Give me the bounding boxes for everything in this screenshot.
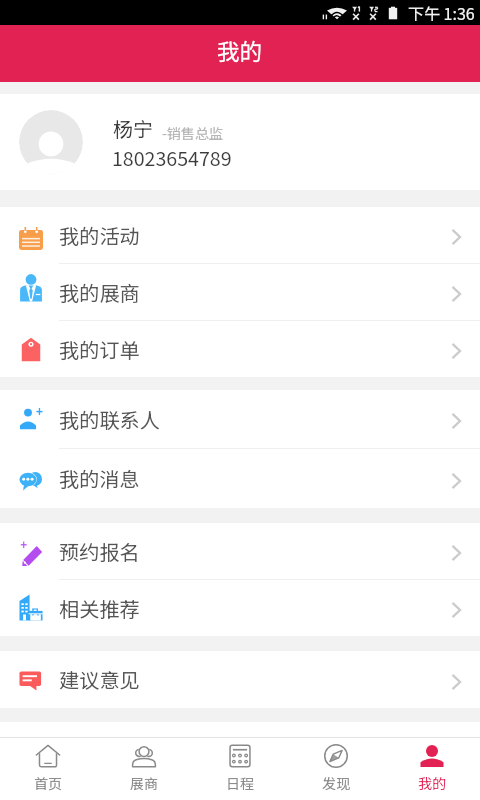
button[interactable]: 我的活动 — [0, 207, 480, 263]
staticText: 建议意见 — [59, 665, 140, 694]
staticText: 18023654789 — [112, 143, 232, 171]
button[interactable]: 我的展商 — [0, 264, 480, 320]
staticText: -销售总监 — [162, 123, 223, 143]
button[interactable]: 建议意见 — [0, 651, 480, 708]
staticText: 发现 — [322, 773, 350, 793]
staticText: 我的 — [217, 34, 263, 67]
button[interactable]: 我的联系人 — [0, 390, 480, 448]
staticText: 预约报名 — [59, 537, 140, 566]
staticText: 下午 1:36 — [408, 1, 475, 24]
button[interactable]: 发现 — [288, 738, 384, 800]
staticText: 我的联系人 — [59, 405, 160, 434]
staticText: 相关推荐 — [59, 594, 140, 623]
button[interactable]: 展商 — [96, 738, 192, 800]
button[interactable]: 我的订单 — [0, 321, 480, 377]
button[interactable]: 我的 — [384, 738, 480, 800]
staticText: 我的订单 — [59, 335, 140, 364]
button[interactable]: 预约报名 — [0, 523, 480, 579]
button[interactable]: 日程 — [192, 738, 288, 800]
staticText: 日程 — [226, 773, 254, 793]
staticText: 我的消息 — [59, 464, 140, 493]
staticText: 首页 — [34, 773, 62, 793]
button[interactable]: 首页 — [0, 738, 96, 800]
button[interactable]: 我的消息 — [0, 449, 480, 508]
button[interactable]: 相关推荐 — [0, 580, 480, 636]
staticText: 展商 — [130, 773, 158, 793]
staticText: 我的 — [418, 773, 446, 793]
staticText: 我的活动 — [59, 221, 140, 250]
staticText: 杨宁 — [113, 114, 153, 143]
staticText: 我的展商 — [59, 278, 140, 307]
